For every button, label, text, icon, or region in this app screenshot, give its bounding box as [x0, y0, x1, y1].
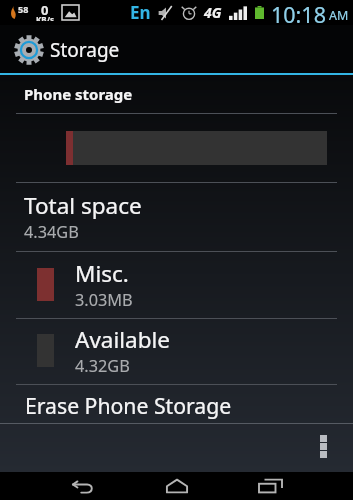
staticText: 58 — [18, 3, 29, 15]
button[interactable]: More options — [308, 428, 338, 464]
staticText: Phone storage — [24, 84, 133, 104]
staticText: Erase Phone Storage — [25, 391, 232, 420]
button[interactable]: Recent apps — [247, 472, 294, 500]
staticText: Total space — [24, 190, 142, 221]
button[interactable]: Storage — [0, 25, 353, 73]
staticText: 4.32GB — [75, 355, 130, 377]
staticText: 4G — [204, 3, 222, 22]
staticText: 10:18 — [271, 0, 326, 25]
staticText: Misc. — [75, 258, 129, 289]
button[interactable]: Available — [0, 319, 353, 385]
staticText: AM — [329, 7, 349, 24]
button[interactable]: Home — [153, 472, 200, 500]
staticText: 3.03MB — [75, 289, 133, 311]
staticText: 4.34GB — [24, 221, 79, 243]
button[interactable]: Erase Phone Storage — [0, 385, 353, 423]
button[interactable]: Back — [59, 472, 106, 500]
staticText: En — [130, 1, 151, 24]
staticText: Storage — [50, 37, 120, 63]
button[interactable]: Misc. — [0, 252, 353, 319]
button[interactable]: Total space — [0, 183, 353, 252]
staticText: KB/s — [36, 14, 54, 21]
staticText: 0 — [41, 1, 49, 19]
staticText: Available — [75, 324, 170, 355]
